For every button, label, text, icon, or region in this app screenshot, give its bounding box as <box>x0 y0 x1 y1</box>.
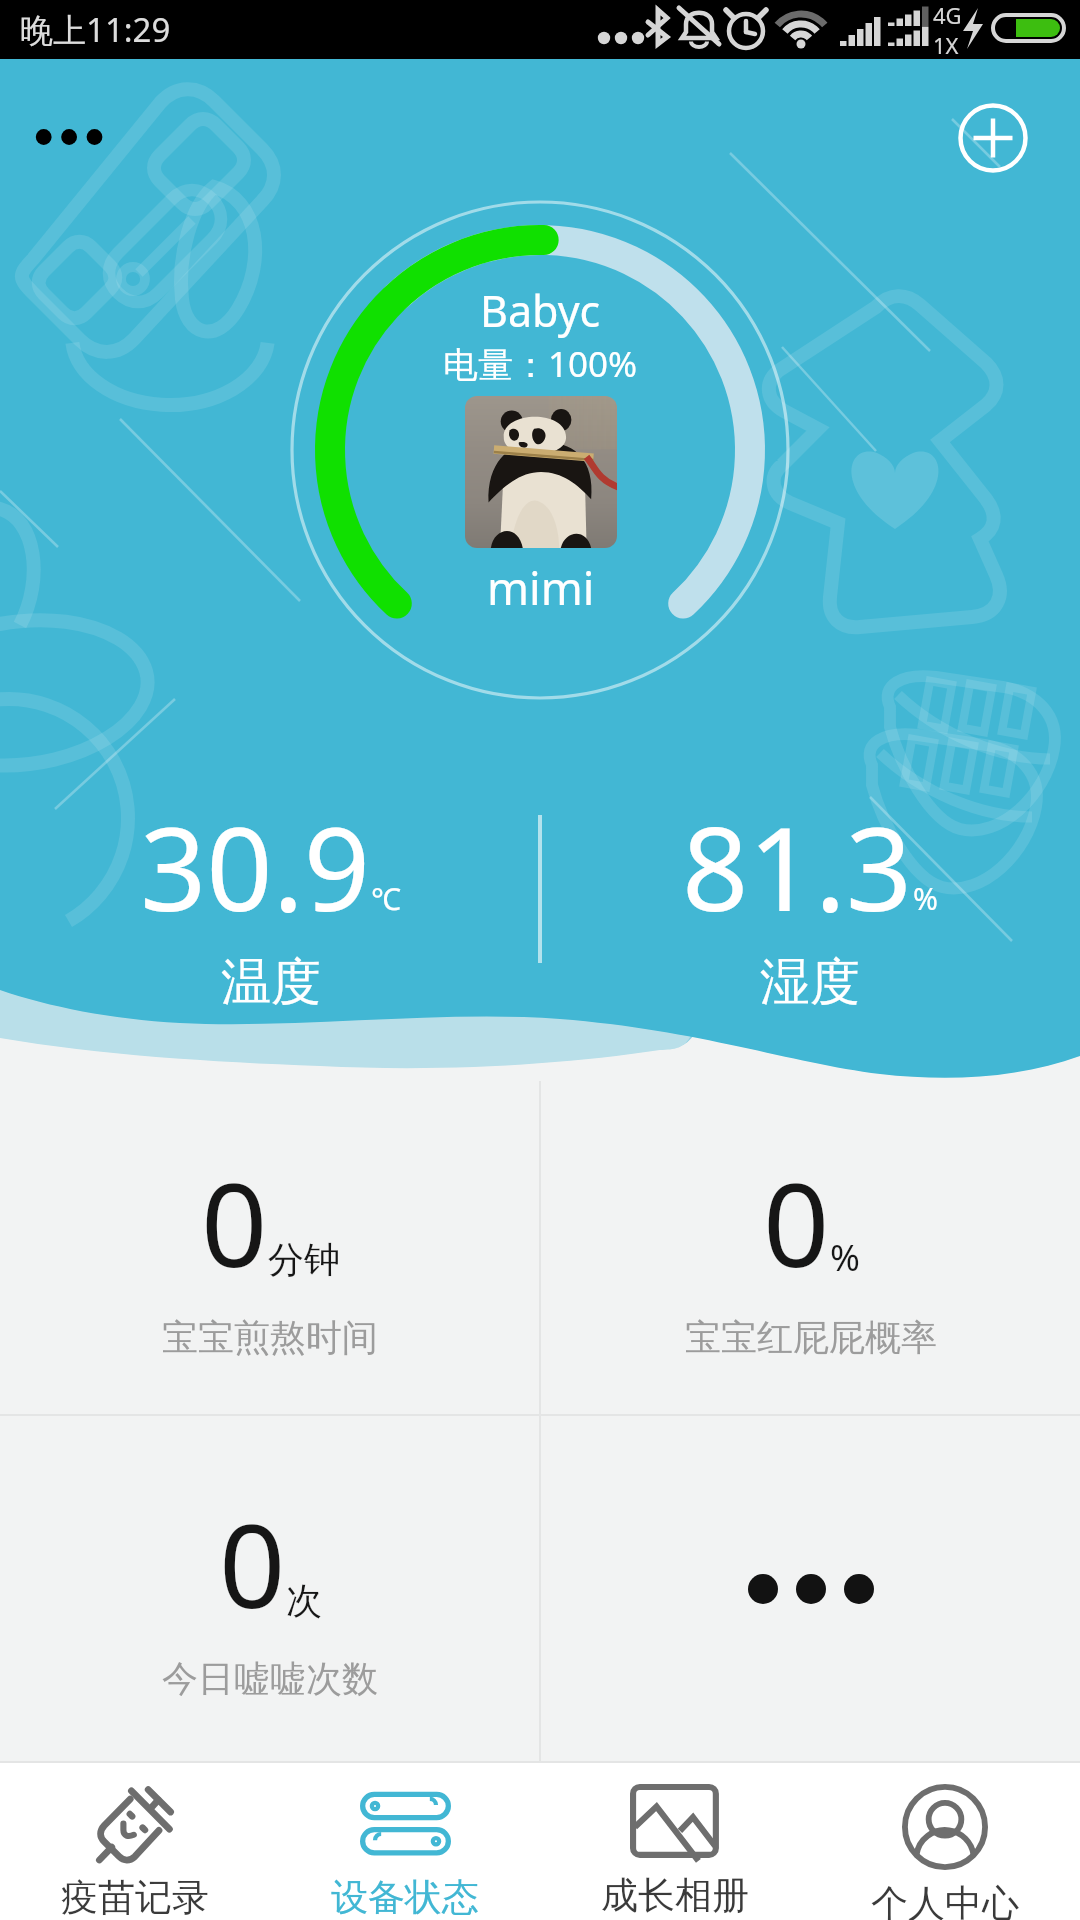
staticText: % <box>830 1233 860 1282</box>
button[interactable]: Add device <box>950 95 1036 181</box>
staticText: 0 <box>219 1484 286 1642</box>
staticText: 温度 <box>221 951 321 1014</box>
staticText: 0 <box>763 1143 830 1301</box>
staticText: 30.9 <box>140 787 371 945</box>
staticText: 宝宝红屁屁概率 <box>685 1315 937 1360</box>
staticText: 设备状态 <box>331 1874 479 1920</box>
staticText: 个人中心 <box>871 1880 1019 1920</box>
staticText: 81.3 <box>682 787 913 945</box>
button[interactable] <box>465 396 617 548</box>
staticText: 电量：100% <box>443 340 638 388</box>
button[interactable]: 个人中心 <box>810 1763 1080 1920</box>
staticText: 次 <box>286 1578 322 1623</box>
button[interactable]: More options <box>20 103 118 171</box>
staticText: mimi <box>487 557 595 618</box>
staticText: 晚上11:29 <box>20 7 171 52</box>
staticText: 4G <box>933 0 962 30</box>
button[interactable]: 疫苗记录 <box>0 1763 270 1920</box>
staticText: 今日嘘嘘次数 <box>162 1656 378 1701</box>
button[interactable]: More <box>541 1416 1080 1761</box>
button[interactable]: 0 <box>0 1081 539 1414</box>
button[interactable]: 0 <box>0 1416 539 1761</box>
button[interactable]: 设备状态 <box>270 1763 540 1920</box>
staticText: ℃ <box>371 878 401 919</box>
staticText: 成长相册 <box>601 1872 749 1919</box>
staticText: % <box>913 878 938 919</box>
button[interactable]: 0 <box>541 1081 1080 1414</box>
staticText: 0 <box>201 1143 268 1301</box>
staticText: Babyc <box>480 281 601 340</box>
staticText: 宝宝煎熬时间 <box>162 1315 378 1360</box>
staticText: 分钟 <box>268 1237 340 1282</box>
staticText: 湿度 <box>760 951 860 1014</box>
button[interactable]: 成长相册 <box>540 1763 810 1920</box>
staticText: 1X <box>933 30 959 59</box>
staticText: 疫苗记录 <box>61 1874 209 1920</box>
